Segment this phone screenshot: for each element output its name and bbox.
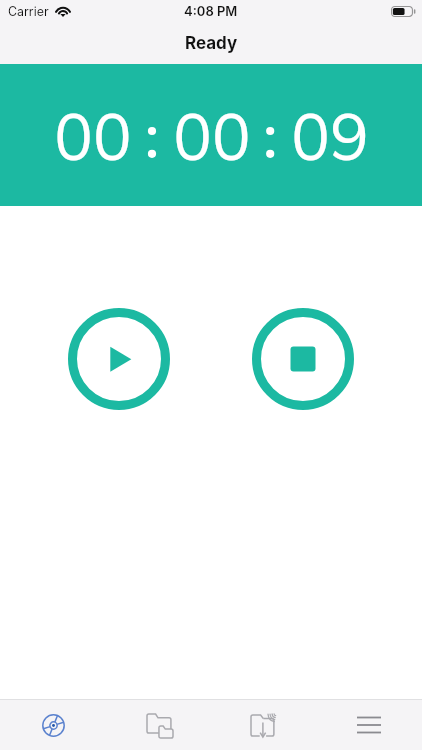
staticText: Carrier [8, 4, 49, 19]
button[interactable]: Folders [105, 700, 210, 750]
staticText: 09 [291, 95, 369, 176]
button[interactable]: Menu [316, 700, 422, 750]
button[interactable]: Stop [252, 308, 354, 410]
staticText: 4:08 PM [184, 3, 238, 19]
button[interactable]: Start [68, 308, 170, 410]
button[interactable]: Disc [0, 700, 105, 750]
staticText: 00 [54, 95, 132, 176]
button[interactable]: Download [210, 700, 316, 750]
staticText: 00 [173, 95, 251, 176]
staticText: Ready [185, 33, 238, 54]
